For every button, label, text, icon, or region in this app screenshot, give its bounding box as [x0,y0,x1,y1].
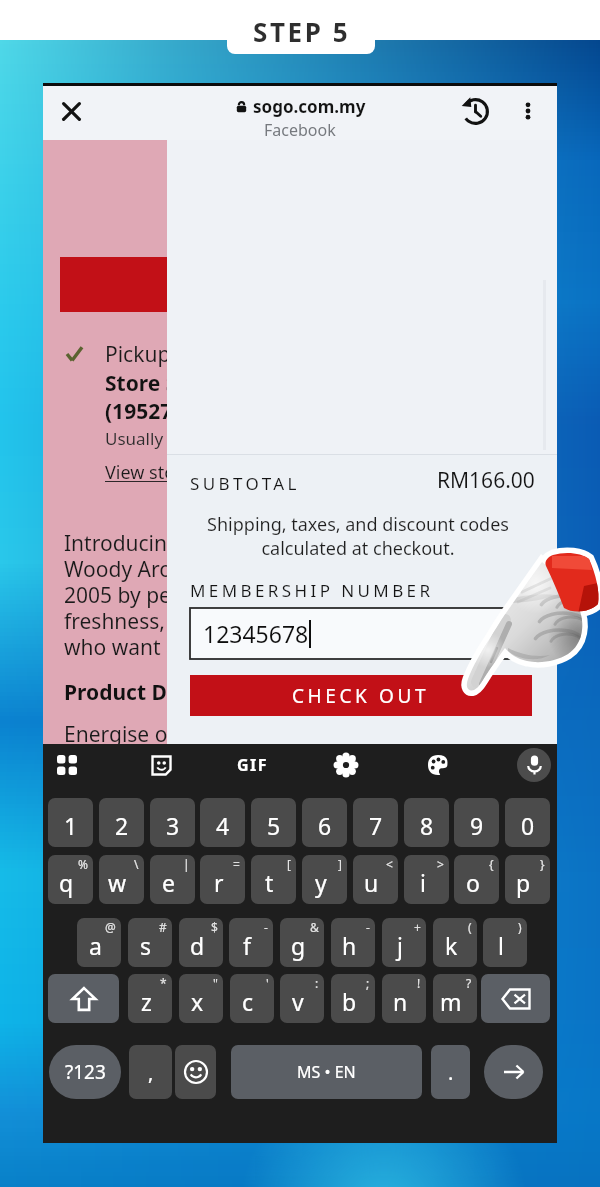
staticText: - [264,919,268,935]
staticText: 1 [64,810,78,841]
button[interactable]: Theme [421,748,455,782]
staticText: 12345678 [203,618,309,649]
staticText: 7 [369,810,383,841]
staticText: r [214,867,224,898]
button[interactable]: MS • EN [231,1045,422,1099]
button[interactable]: 5 [251,798,296,847]
staticText: w [108,867,127,898]
button[interactable]: z [128,974,172,1023]
staticText: 5 [267,810,281,841]
button[interactable]: 9 [454,798,499,847]
button[interactable]: 0 [505,798,550,847]
button[interactable]: STEP 5 [227,4,375,54]
button[interactable]: 4 [200,798,245,847]
button[interactable]: o [454,855,499,904]
staticText: View sto [105,460,176,485]
button[interactable]: s [128,918,172,967]
staticText: x [191,986,204,1017]
button[interactable]: d [179,918,223,967]
staticText: < [386,856,393,872]
button[interactable]: Backspace [481,974,550,1023]
button[interactable]: v [280,974,324,1023]
button[interactable]: . [431,1045,470,1099]
button[interactable]: Emoji [175,1045,216,1099]
button[interactable]: Settings [329,748,363,782]
staticText: 0 [521,810,535,841]
staticText: $ [211,919,218,935]
staticText: = [233,856,240,872]
staticText: : [315,975,319,991]
staticText: CHECK OUT [292,683,430,709]
staticText: . [448,1059,454,1086]
button[interactable]: ?123 [49,1045,121,1099]
staticText: u [364,867,379,898]
button[interactable]: Shift [48,974,119,1023]
button[interactable]: f [229,918,273,967]
button[interactable]: y [302,855,347,904]
staticText: STEP 5 [253,14,351,49]
button[interactable]: 2 [99,798,144,847]
staticText: Product De [64,678,180,707]
button[interactable]: i [404,855,449,904]
button[interactable]: h [331,918,375,967]
button[interactable]: j [382,918,426,967]
button[interactable]: Stickers [144,748,178,782]
button[interactable]: Apps [50,748,84,782]
staticText: Store S [105,369,178,398]
staticText: n [393,986,408,1017]
staticText: ?123 [65,1059,106,1085]
staticText: i [420,867,426,898]
button[interactable]: , [129,1045,172,1099]
staticText: 3 [166,810,180,841]
button[interactable]: Close [51,91,91,131]
button[interactable]: GIF [233,753,273,777]
button[interactable]: n [382,974,426,1023]
button[interactable]: r [200,855,245,904]
staticText: h [342,930,357,961]
button[interactable]: a [77,918,121,967]
button[interactable]: x [179,974,223,1023]
staticText: ; [366,975,370,991]
button[interactable]: u [353,855,398,904]
button[interactable]: 8 [404,798,449,847]
staticText: @ [105,919,116,935]
staticText: + [414,919,421,935]
button[interactable]: w [99,855,144,904]
button[interactable]: 7 [353,798,398,847]
button[interactable]: c [230,974,274,1023]
staticText: e [162,867,175,898]
button[interactable]: g [280,918,324,967]
staticText: f [243,930,251,961]
staticText: y [315,867,327,898]
button[interactable]: t [251,855,296,904]
button[interactable]: 1 [48,798,93,847]
button[interactable]: 12345678 [190,608,532,659]
button[interactable]: k [433,918,477,967]
button[interactable]: p [505,855,550,904]
button[interactable]: q [48,855,93,904]
staticText: j [397,930,403,961]
button[interactable]: b [331,974,375,1023]
button[interactable]: Voice input [517,748,551,782]
button[interactable]: Enter [484,1045,543,1099]
staticText: b [342,986,357,1017]
button[interactable]: m [433,974,477,1023]
staticText: sogo.com.my [253,95,366,118]
staticText: m [440,986,462,1017]
staticText: MEMBERSHIP NUMBER [190,579,434,602]
button[interactable]: CHECK OUT [190,675,532,716]
staticText: ? [466,975,472,991]
staticText: , [148,1059,154,1086]
staticText: ] [338,856,342,872]
button[interactable]: 6 [302,798,347,847]
button[interactable]: l [483,918,527,967]
staticText: % [78,856,88,872]
button[interactable]: 3 [150,798,195,847]
staticText: 2 [115,810,129,841]
button[interactable]: More options [508,91,548,131]
button[interactable]: History [455,91,495,131]
staticText: # [159,919,167,935]
button[interactable]: e [150,855,195,904]
staticText: p [516,867,531,898]
staticText: 8 [420,810,434,841]
